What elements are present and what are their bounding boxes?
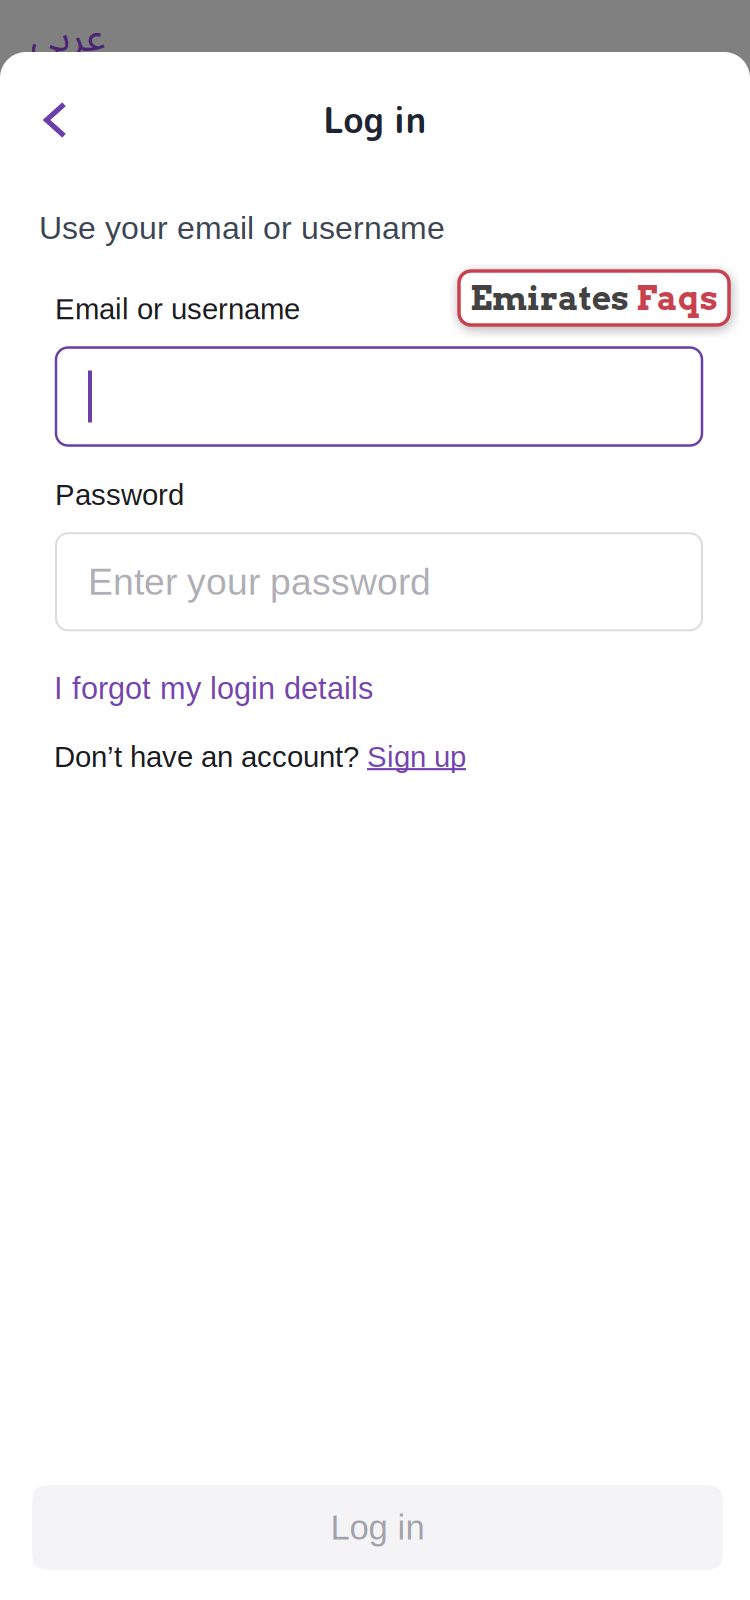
staticText: Log in bbox=[323, 96, 426, 144]
staticText: Use your email or username bbox=[39, 210, 445, 246]
staticText: Log in bbox=[330, 1508, 424, 1547]
staticText: Email or username bbox=[55, 293, 300, 326]
staticText: عربي bbox=[30, 0, 105, 80]
staticText: Sign up bbox=[367, 741, 466, 773]
staticText: I forgot my login details bbox=[54, 671, 373, 706]
staticText: Enter your password bbox=[88, 561, 431, 603]
button[interactable]: Back bbox=[0, 85, 110, 155]
button[interactable]: Log in bbox=[32, 1485, 723, 1570]
staticText: Don’t have an account? bbox=[54, 741, 367, 773]
staticText: Faqs bbox=[636, 278, 718, 318]
button[interactable]: Sign up bbox=[367, 741, 466, 773]
staticText: Emirates bbox=[470, 278, 636, 318]
staticText: Password bbox=[55, 478, 184, 511]
button[interactable]: I forgot my login details bbox=[54, 671, 373, 706]
